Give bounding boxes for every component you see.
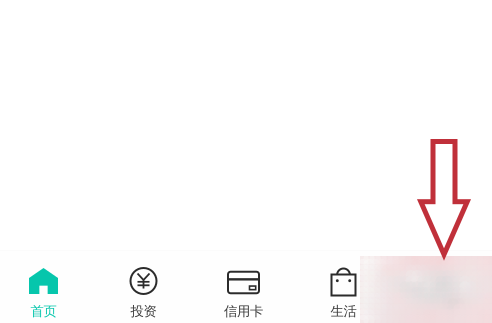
staticText: 首页 <box>30 303 56 319</box>
button[interactable]: 投资 <box>93 251 193 323</box>
button[interactable]: 我的 <box>393 251 492 323</box>
button[interactable]: 生活 <box>293 251 393 323</box>
staticText: 投资 <box>130 303 156 319</box>
staticText: 生活 <box>330 303 356 319</box>
button[interactable]: 首页 <box>0 251 93 323</box>
button[interactable]: 信用卡 <box>193 251 293 323</box>
staticText: 信用卡 <box>224 303 263 319</box>
staticText: 我的 <box>430 303 456 319</box>
